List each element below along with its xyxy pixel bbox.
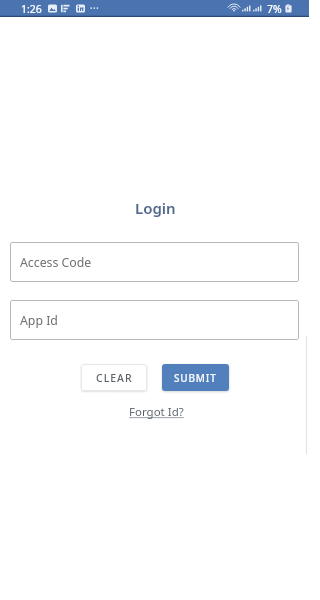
staticText: SUBMIT bbox=[174, 371, 217, 385]
staticText: Access Code bbox=[20, 254, 92, 271]
button[interactable]: Access Code bbox=[10, 242, 299, 282]
staticText: 1:26 bbox=[21, 2, 42, 16]
button[interactable]: CLEAR bbox=[81, 364, 147, 391]
staticText: 7% bbox=[267, 2, 282, 16]
staticText: Login bbox=[135, 198, 176, 218]
button[interactable]: App Id bbox=[10, 300, 299, 340]
button[interactable]: Forgot Id? bbox=[129, 404, 184, 420]
staticText: CLEAR bbox=[96, 371, 133, 385]
button[interactable]: SUBMIT bbox=[162, 364, 229, 391]
staticText: App Id bbox=[20, 312, 58, 329]
